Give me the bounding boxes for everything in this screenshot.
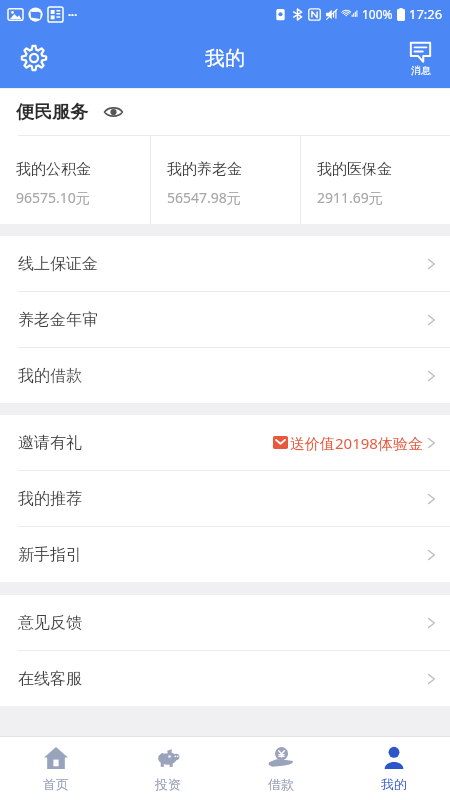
staticText: 养老金年审 [18, 310, 98, 330]
button[interactable]: Settings [14, 38, 54, 78]
staticText: 我的公积金 [16, 160, 91, 179]
staticText: 投资 [155, 776, 181, 792]
staticText: 线上保证金 [18, 254, 98, 274]
staticText: 17:26 [409, 5, 443, 23]
button[interactable]: 我的公积金 [0, 136, 150, 207]
button[interactable]: 在线客服 [0, 651, 450, 706]
button[interactable]: 新手指引 [0, 527, 450, 582]
button[interactable]: 我的 [337, 737, 450, 800]
button[interactable]: 投资 [112, 737, 224, 800]
staticText: 我的医保金 [317, 160, 392, 179]
button[interactable]: 养老金年审 [0, 292, 450, 347]
staticText: 意见反馈 [18, 613, 82, 633]
button[interactable]: Toggle visibility [100, 99, 126, 125]
staticText: 我的 [381, 776, 407, 792]
button[interactable]: 借款 [224, 737, 337, 800]
staticText: 我的借款 [18, 366, 82, 386]
button[interactable]: 线上保证金 [0, 236, 450, 291]
button[interactable]: 我的养老金 [151, 136, 300, 207]
staticText: 100% [362, 6, 393, 22]
button[interactable]: 我的借款 [0, 348, 450, 403]
staticText: 56547.98元 [167, 188, 241, 207]
staticText: 邀请有礼 [18, 433, 82, 453]
staticText: 96575.10元 [16, 188, 90, 207]
button[interactable]: 我的医保金 [301, 136, 450, 207]
staticText: ··· [68, 7, 78, 22]
staticText: 首页 [43, 776, 69, 792]
button[interactable]: 我的推荐 [0, 471, 450, 526]
staticText: 我的推荐 [18, 489, 82, 509]
button[interactable]: 首页 [0, 737, 112, 800]
staticText: 2911.69元 [317, 188, 383, 207]
button[interactable]: 意见反馈 [0, 595, 450, 650]
button[interactable]: 邀请有礼 [0, 415, 450, 470]
staticText: 消息 [411, 64, 431, 77]
staticText: 送价值20198体验金 [290, 433, 423, 453]
staticText: 借款 [268, 776, 294, 792]
staticText: 我的养老金 [167, 160, 242, 179]
staticText: 我的 [205, 46, 245, 71]
staticText: 新手指引 [18, 545, 82, 565]
button[interactable]: Messages [403, 38, 438, 79]
staticText: 在线客服 [18, 669, 82, 689]
staticText: 便民服务 [16, 101, 88, 124]
